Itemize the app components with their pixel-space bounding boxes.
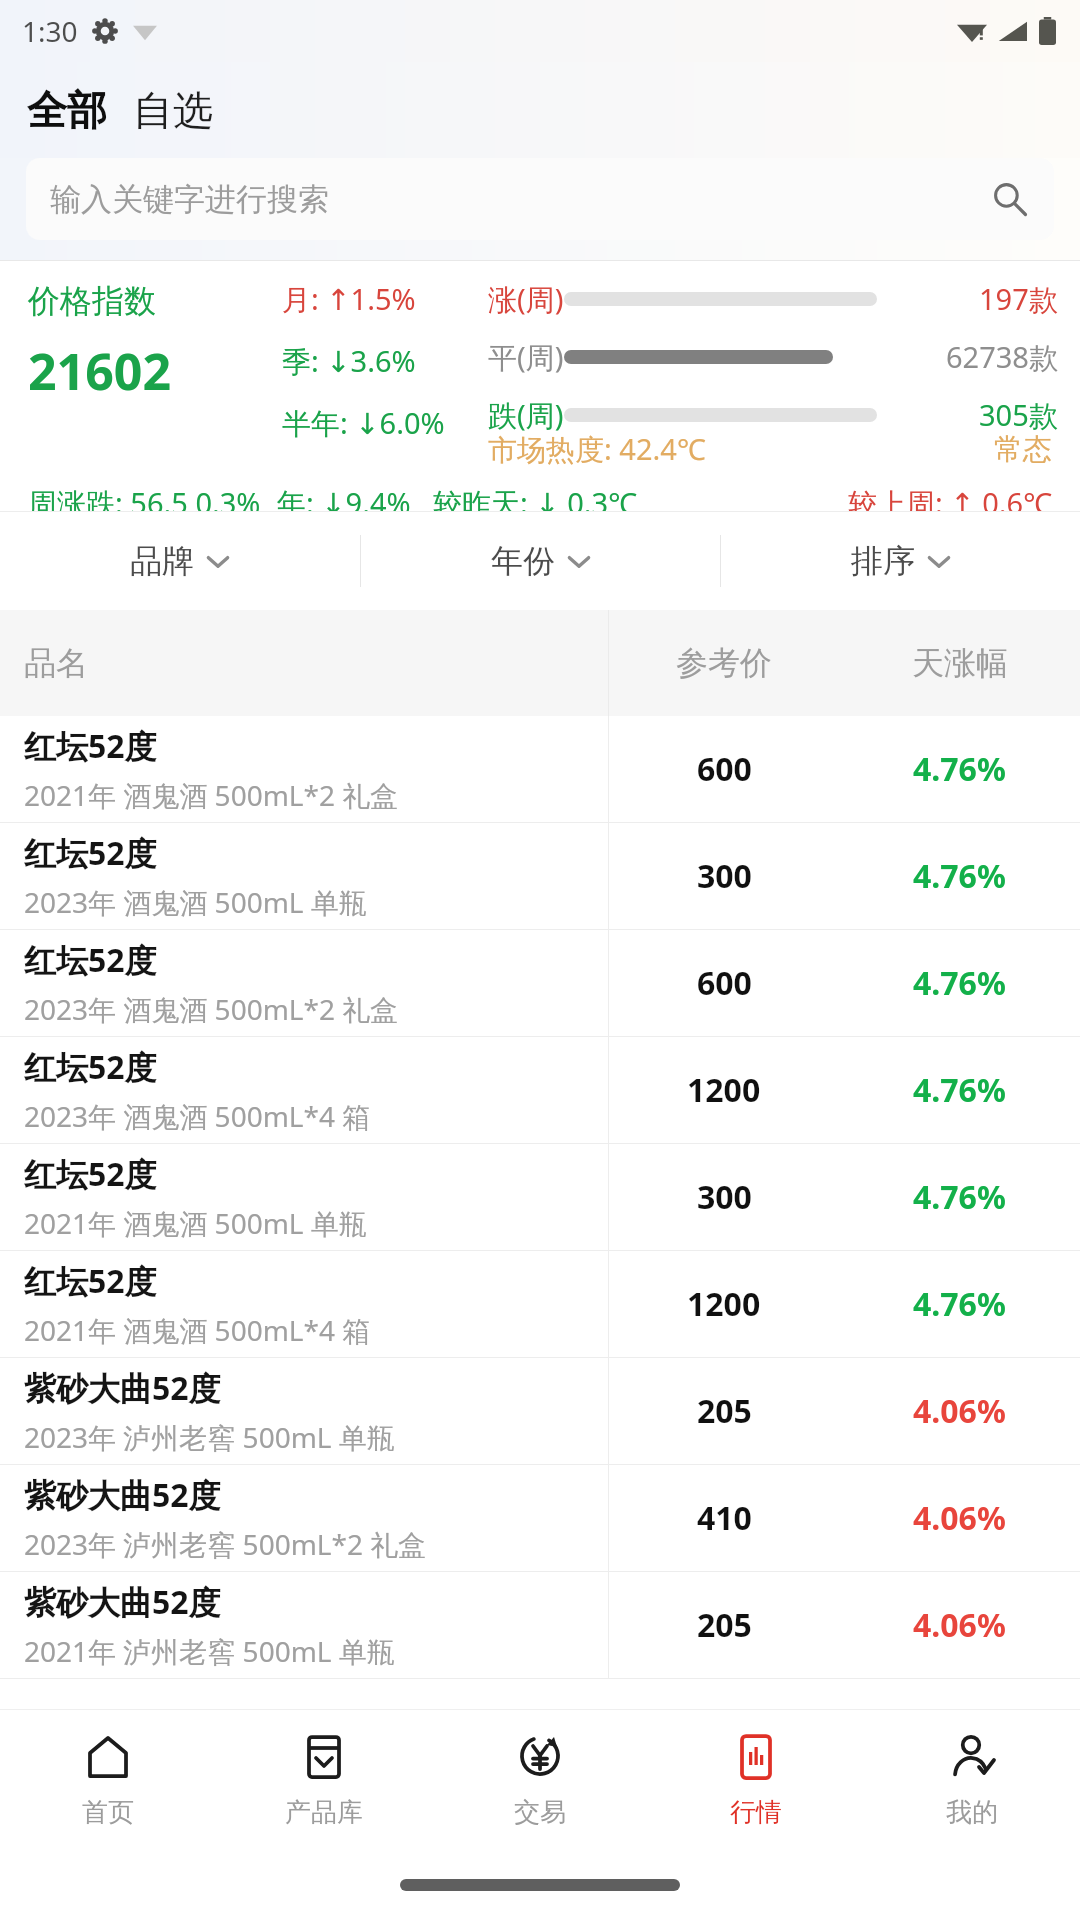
staticText: 紫砂大曲52度 [24, 1473, 221, 1517]
other: Search [992, 181, 1028, 217]
staticText: 1200 [687, 1282, 761, 1326]
button[interactable]: 产品库 [216, 1710, 432, 1850]
staticText: 交易 [514, 1796, 566, 1829]
button[interactable]: 紫砂大曲52度 [0, 1358, 1080, 1464]
other: 行情 [731, 1732, 781, 1782]
staticText: 300 [697, 854, 752, 898]
staticText: 4.76% [913, 1282, 1006, 1326]
staticText: 1200 [687, 1068, 761, 1112]
staticText: 红坛52度 [24, 1045, 157, 1089]
staticText: 197款 [979, 279, 1058, 319]
staticText: 周涨跌: 56.5 0.3% [28, 483, 261, 511]
staticText: 跌(周) [488, 395, 564, 435]
staticText: 4.06% [913, 1603, 1006, 1647]
staticText: 排序 [851, 541, 915, 581]
staticText: 21602 [28, 337, 171, 405]
staticText: 我的 [946, 1796, 998, 1829]
staticText: 年: ↓9.4% [277, 483, 411, 511]
staticText: 输入关键字进行搜索 [50, 180, 329, 219]
button[interactable]: 红坛52度 [0, 930, 1080, 1036]
button[interactable]: 排序 [721, 512, 1080, 610]
staticText: 涨(周) [488, 279, 564, 319]
staticText: 205 [697, 1603, 752, 1647]
staticText: 价格指数 [28, 281, 156, 321]
staticText: 2021年 泸州老窖 500mL 单瓶 [24, 1632, 395, 1670]
button[interactable]: 行情 [648, 1710, 864, 1850]
other: 我的 [947, 1732, 997, 1782]
staticText: 市场热度: 42.4℃ [488, 429, 706, 469]
staticText: 天涨幅 [912, 643, 1008, 683]
staticText: 品名 [24, 643, 88, 683]
staticText: 月: ↑1.5% [282, 279, 416, 319]
staticText: 参考价 [676, 643, 772, 683]
other: 产品库 [299, 1732, 349, 1782]
button[interactable]: 全部 [24, 75, 110, 145]
staticText: 自选 [133, 85, 213, 135]
button[interactable]: 首页 [0, 1710, 216, 1850]
staticText: 红坛52度 [24, 724, 157, 768]
button[interactable]: 红坛52度 [0, 1037, 1080, 1143]
staticText: 季: ↓3.6% [282, 341, 416, 381]
button[interactable]: 红坛52度 [0, 1251, 1080, 1357]
staticText: 305款 [979, 395, 1058, 435]
staticText: 62738款 [946, 337, 1058, 377]
staticText: 1:30 [22, 12, 78, 50]
staticText: 2021年 酒鬼酒 500mL 单瓶 [24, 1204, 367, 1242]
staticText: 4.76% [913, 747, 1006, 791]
staticText: 紫砂大曲52度 [24, 1366, 221, 1410]
staticText: 4.76% [913, 1068, 1006, 1112]
button[interactable]: 红坛52度 [0, 1144, 1080, 1250]
button[interactable]: 红坛52度 [0, 716, 1080, 822]
button[interactable]: 红坛52度 [0, 823, 1080, 929]
staticText: 半年: ↓6.0% [282, 403, 445, 443]
staticText: 平(周) [488, 337, 564, 377]
staticText: 红坛52度 [24, 831, 157, 875]
staticText: 红坛52度 [24, 1259, 157, 1303]
button[interactable]: 年份 [361, 512, 720, 610]
staticText: 2023年 酒鬼酒 500mL*4 箱 [24, 1097, 371, 1135]
staticText: 600 [697, 961, 752, 1005]
button[interactable]: 我的 [864, 1710, 1080, 1850]
staticText: 2021年 酒鬼酒 500mL*4 箱 [24, 1311, 371, 1349]
staticText: 常态 [994, 431, 1052, 468]
staticText: 300 [697, 1175, 752, 1219]
staticText: 红坛52度 [24, 938, 157, 982]
staticText: 2023年 酒鬼酒 500mL 单瓶 [24, 883, 367, 921]
staticText: 行情 [730, 1796, 782, 1829]
button[interactable]: 自选 [130, 75, 216, 145]
staticText: 年份 [491, 541, 555, 581]
staticText: 600 [697, 747, 752, 791]
button[interactable]: 紫砂大曲52度 [0, 1465, 1080, 1571]
staticText: 全部 [27, 85, 107, 135]
staticText: 首页 [82, 1796, 134, 1829]
staticText: 红坛52度 [24, 1152, 157, 1196]
staticText: 紫砂大曲52度 [24, 1580, 221, 1624]
staticText: 4.06% [913, 1496, 1006, 1540]
staticText: 2021年 酒鬼酒 500mL*2 礼盒 [24, 776, 399, 814]
button[interactable]: 紫砂大曲52度 [0, 1572, 1080, 1678]
staticText: 产品库 [285, 1796, 363, 1829]
button[interactable]: 输入关键字进行搜索 [26, 158, 1054, 240]
other: 首页 [83, 1732, 133, 1782]
button[interactable]: 品牌 [0, 512, 360, 610]
button[interactable]: 交易 [432, 1710, 648, 1850]
staticText: 较上周: ↑ 0.6℃ [848, 483, 1052, 511]
staticText: 品牌 [130, 541, 194, 581]
staticText: 2023年 酒鬼酒 500mL*2 礼盒 [24, 990, 399, 1028]
staticText: 2023年 泸州老窖 500mL 单瓶 [24, 1418, 395, 1456]
staticText: 4.76% [913, 1175, 1006, 1219]
staticText: 4.76% [913, 961, 1006, 1005]
staticText: 较昨天: ↓ 0.3℃ [433, 483, 637, 511]
staticText: 2023年 泸州老窖 500mL*2 礼盒 [24, 1525, 427, 1563]
staticText: 205 [697, 1389, 752, 1433]
staticText: 4.76% [913, 854, 1006, 898]
staticText: 4.06% [913, 1389, 1006, 1433]
other: 交易 [515, 1732, 565, 1782]
staticText: 410 [697, 1496, 752, 1540]
